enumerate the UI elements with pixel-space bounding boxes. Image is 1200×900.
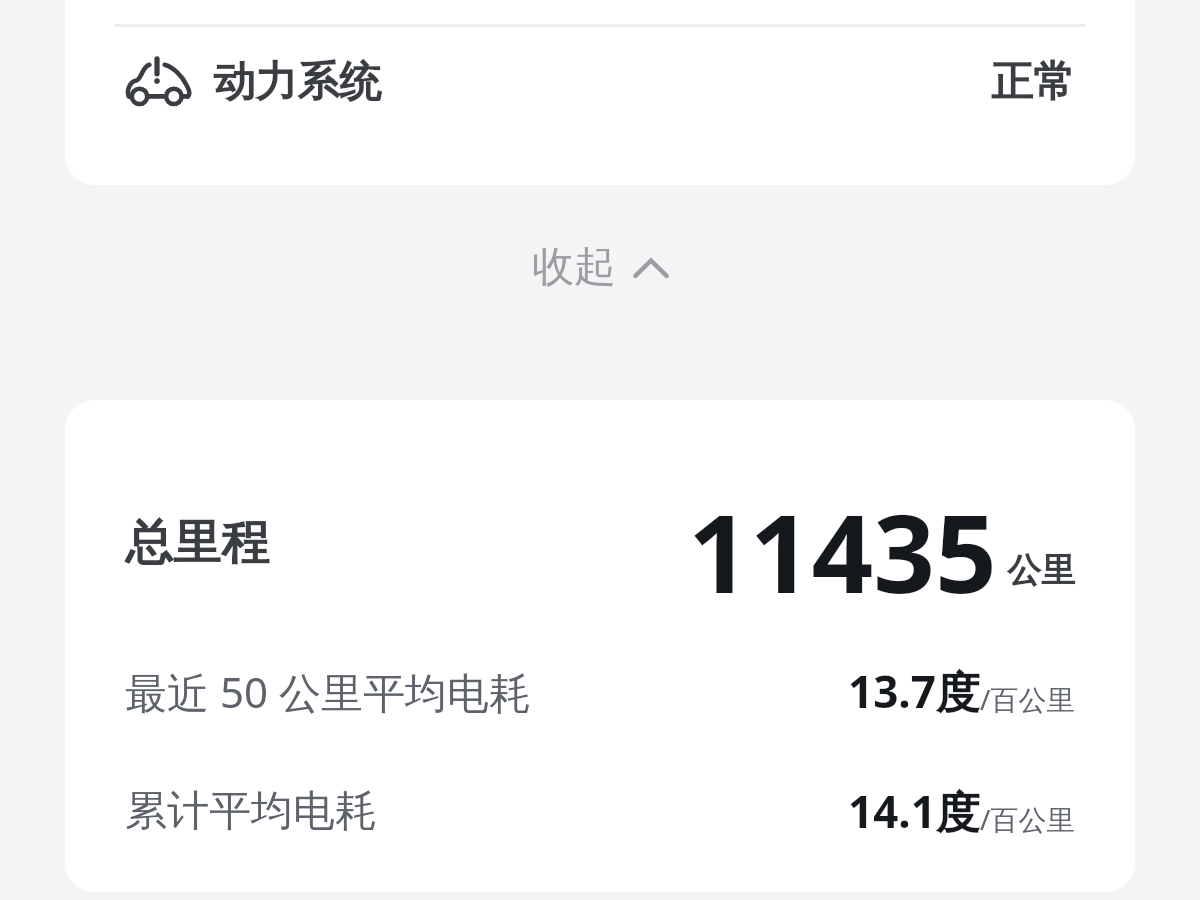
staticText: 正常 [991,56,1075,109]
staticText: 14.1度 [848,781,980,841]
staticText: 收起 [532,241,616,294]
staticText: 动力系统 [213,56,381,109]
button[interactable]: 收起 [508,233,692,302]
button[interactable]: 动力系统 [65,27,1135,137]
staticText: /百公里 [980,680,1075,718]
button[interactable]: 总里程 [65,478,1135,608]
staticText: /百公里 [980,800,1075,838]
staticText: 累计平均电耗 [125,785,377,838]
button[interactable]: 最近 50 公里平均电耗 [65,648,1135,734]
staticText: 总里程 [125,513,269,573]
staticText: 最近 50 公里平均电耗 [125,663,531,720]
other: 动力系统 [125,58,191,106]
button[interactable]: 累计平均电耗 [65,768,1135,854]
staticText: 公里 [1007,549,1075,592]
staticText: 11435 [688,478,997,608]
staticText: 13.7度 [848,661,980,721]
other: 收起 [634,257,668,279]
